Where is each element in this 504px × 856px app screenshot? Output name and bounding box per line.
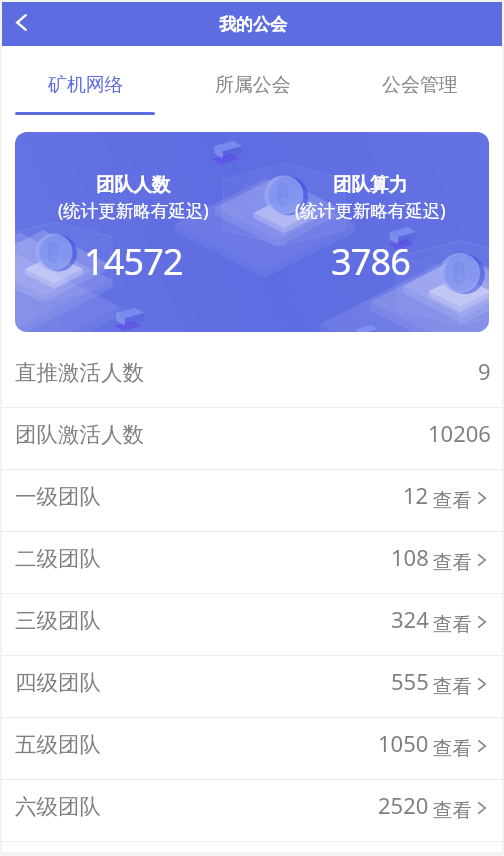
staticText: 一级团队 [15,483,101,510]
staticText: 324 [391,604,429,634]
staticText: 查看 [433,674,472,698]
staticText: 查看 [433,550,472,574]
staticText: 团队人数 [96,173,171,196]
button[interactable]: 四级团队 [2,656,502,718]
staticText: (统计更新略有延迟) [295,198,446,222]
button[interactable]: 所属公会 [168,46,335,116]
staticText: 公会管理 [382,73,458,97]
button[interactable]: 五级团队 [2,718,502,780]
button[interactable]: Back [2,4,42,44]
staticText: 1050 [378,728,429,758]
staticText: 我的公会 [219,14,287,35]
button[interactable]: 直推激活人数 [2,346,502,408]
button[interactable]: 二级团队 [2,532,502,594]
button[interactable]: 三级团队 [2,594,502,656]
staticText: 555 [391,666,429,696]
staticText: 团队算力 [333,173,408,196]
staticText: 108 [391,542,429,572]
staticText: 查看 [433,612,472,636]
staticText: 3786 [331,237,410,286]
staticText: 查看 [433,798,472,822]
staticText: 直推激活人数 [15,359,144,386]
button[interactable]: 一级团队 [2,470,502,532]
button[interactable]: 团队激活人数 [2,408,502,470]
button[interactable]: 矿机网络 [2,46,168,116]
staticText: 五级团队 [15,731,101,758]
staticText: 所属公会 [215,73,291,97]
staticText: 四级团队 [15,669,101,696]
staticText: 团队激活人数 [15,421,144,448]
button[interactable]: 六级团队 [2,780,502,842]
staticText: 2520 [378,790,429,820]
staticText: 12 [403,480,429,510]
staticText: (统计更新略有延迟) [58,198,209,222]
staticText: 矿机网络 [48,73,124,97]
staticText: 三级团队 [15,607,101,634]
staticText: 查看 [433,736,472,760]
staticText: 六级团队 [15,793,101,820]
button[interactable]: 公会管理 [335,46,502,116]
staticText: 9 [478,356,491,386]
staticText: 14572 [84,237,183,286]
staticText: 10206 [428,418,491,448]
staticText: 二级团队 [15,545,101,572]
staticText: 查看 [433,488,472,512]
